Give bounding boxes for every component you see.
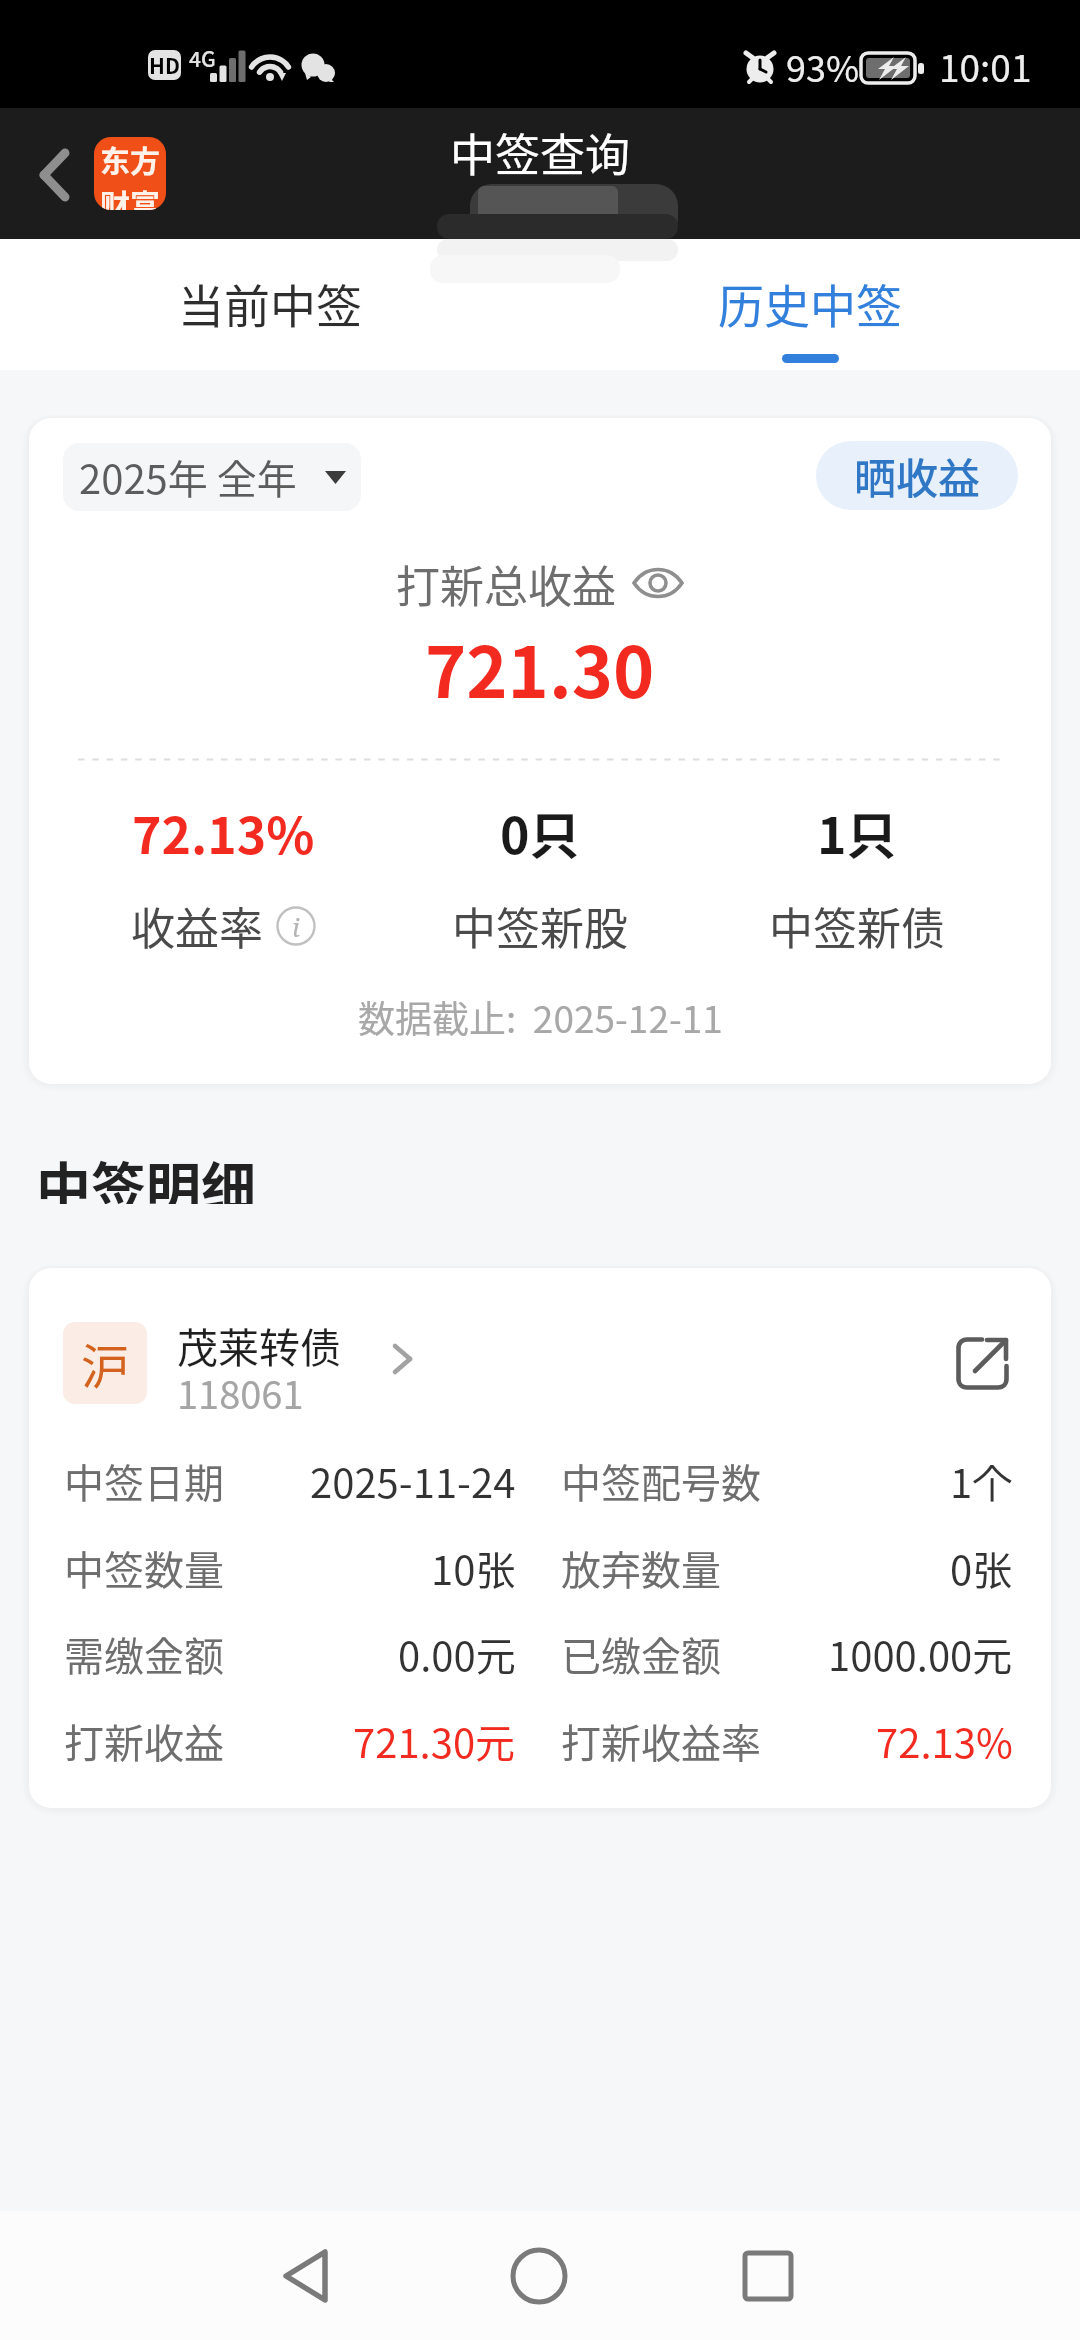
staticText: 72.13% <box>132 796 315 868</box>
staticText: 需缴金额 <box>64 1625 224 1683</box>
staticText: 721.30 <box>425 617 655 718</box>
staticText: 中签明细 <box>36 1144 257 1204</box>
staticText: 0.00元 <box>398 1625 516 1683</box>
staticText: 10张 <box>431 1539 516 1597</box>
staticText: 2025-11-24 <box>310 1452 516 1510</box>
button[interactable]: Back <box>0 108 94 239</box>
staticText: 收益率 <box>131 894 263 958</box>
staticText: 93% <box>786 40 860 92</box>
staticText: 72.13% <box>876 1712 1013 1770</box>
staticText: 中签新股 <box>452 894 628 958</box>
button[interactable]: 2025年 全年 <box>63 443 361 511</box>
staticText: 1000.00元 <box>828 1625 1013 1683</box>
staticText: 4G <box>189 43 216 73</box>
staticText: 茂莱转债 <box>177 1315 341 1374</box>
staticText: 沪 <box>81 1328 130 1398</box>
staticText: 打新收益 <box>64 1712 224 1770</box>
staticText: 10:01 <box>939 39 1032 93</box>
staticText: 打新总收益 <box>396 552 616 616</box>
button[interactable]: 晒收益 <box>816 441 1018 510</box>
staticText: i <box>292 909 300 944</box>
staticText: 中签数量 <box>64 1539 224 1597</box>
staticText: 当前中签 <box>178 270 362 337</box>
staticText: 打新收益率 <box>561 1712 761 1770</box>
staticText: 2025年 全年 <box>79 448 297 506</box>
staticText: 已缴金额 <box>561 1625 721 1683</box>
button[interactable]: Recent apps <box>698 2211 838 2340</box>
staticText: 0只 <box>500 796 580 868</box>
staticText: 中签新债 <box>769 894 945 958</box>
staticText: 中签配号数 <box>561 1452 761 1510</box>
button[interactable]: 当前中签 <box>0 239 540 370</box>
staticText: 118061 <box>177 1365 304 1420</box>
staticText: 东方 <box>100 137 160 180</box>
staticText: 数据截止: 2025-12-11 <box>358 990 723 1044</box>
button[interactable]: Home <box>469 2211 609 2340</box>
staticText: 1个 <box>950 1452 1013 1510</box>
staticText: 721.30元 <box>353 1712 516 1770</box>
button[interactable]: 历史中签 <box>540 239 1080 370</box>
staticText: 1只 <box>817 796 897 868</box>
staticText: 晒收益 <box>854 445 981 506</box>
button[interactable]: East Money <box>94 137 166 210</box>
button[interactable]: Open detail <box>938 1319 1030 1411</box>
staticText: 财富 <box>100 181 160 210</box>
staticText: 中签日期 <box>64 1452 224 1510</box>
button[interactable]: Back <box>238 2211 378 2340</box>
staticText: 历史中签 <box>718 270 902 337</box>
staticText: 放弃数量 <box>561 1539 721 1597</box>
staticText: 中签查询 <box>450 120 631 185</box>
staticText: 0张 <box>950 1539 1013 1597</box>
staticText: HD <box>149 50 180 80</box>
